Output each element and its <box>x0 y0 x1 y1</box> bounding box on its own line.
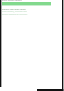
staticText: Fresh market recipes <box>2 0 22 2</box>
staticText: Crisp greens, avocado and lemon dressing… <box>2 10 28 16</box>
staticText: Garden salad bowl recipe <box>2 8 26 11</box>
